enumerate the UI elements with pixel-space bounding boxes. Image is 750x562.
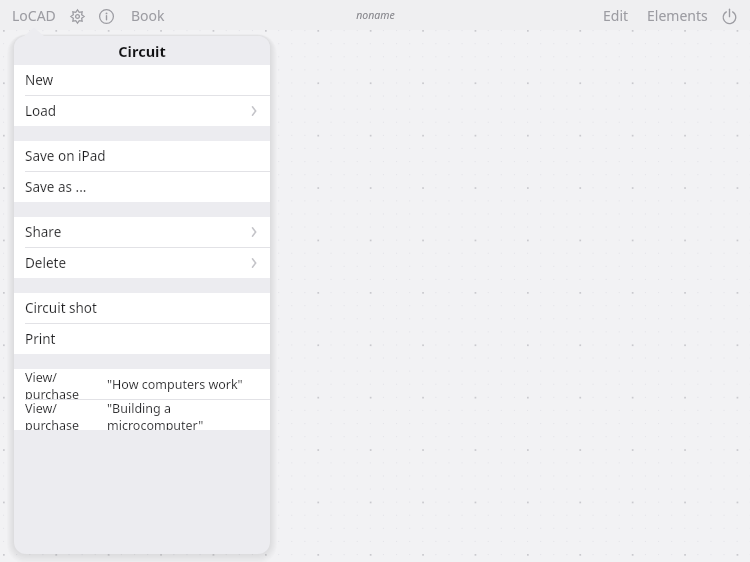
staticText: Save on iPad — [25, 147, 106, 165]
staticText: Circuit shot — [25, 299, 97, 317]
staticText: Delete — [25, 254, 67, 272]
button[interactable]: Circuit shot — [14, 293, 270, 323]
button[interactable]: Info — [93, 3, 119, 29]
staticText: Save as ... — [25, 178, 87, 196]
button[interactable]: LoCAD — [0, 1, 64, 30]
staticText: Load — [25, 102, 57, 120]
staticText: Elements — [647, 6, 708, 25]
staticText: Book — [131, 6, 165, 25]
button[interactable]: Delete — [14, 248, 270, 278]
staticText: "Building a microcomputer" — [107, 400, 270, 430]
button[interactable]: Load — [14, 96, 270, 126]
button[interactable]: View/purchase — [14, 369, 270, 399]
button[interactable]: Settings — [64, 3, 90, 29]
staticText: Circuit — [118, 41, 166, 61]
button[interactable]: New — [14, 65, 270, 95]
button[interactable]: View/purchase — [14, 400, 270, 430]
button[interactable]: Edit — [597, 1, 635, 30]
staticText: LoCAD — [12, 6, 56, 25]
button[interactable]: Save on iPad — [14, 141, 270, 171]
button[interactable]: Save as ... — [14, 172, 270, 202]
button[interactable]: Book — [125, 1, 171, 30]
button[interactable]: Print — [14, 324, 270, 354]
staticText: View/purchase — [25, 400, 107, 430]
staticText: View/purchase — [25, 369, 107, 399]
staticText: Print — [25, 330, 56, 348]
button[interactable]: Share — [14, 217, 270, 247]
button[interactable]: Elements — [641, 1, 714, 30]
staticText: noname — [356, 8, 395, 22]
staticText: New — [25, 71, 54, 89]
staticText: "How computers work" — [107, 376, 243, 393]
staticText: Edit — [603, 6, 629, 25]
staticText: Share — [25, 223, 62, 241]
button[interactable]: Power — [716, 3, 742, 29]
